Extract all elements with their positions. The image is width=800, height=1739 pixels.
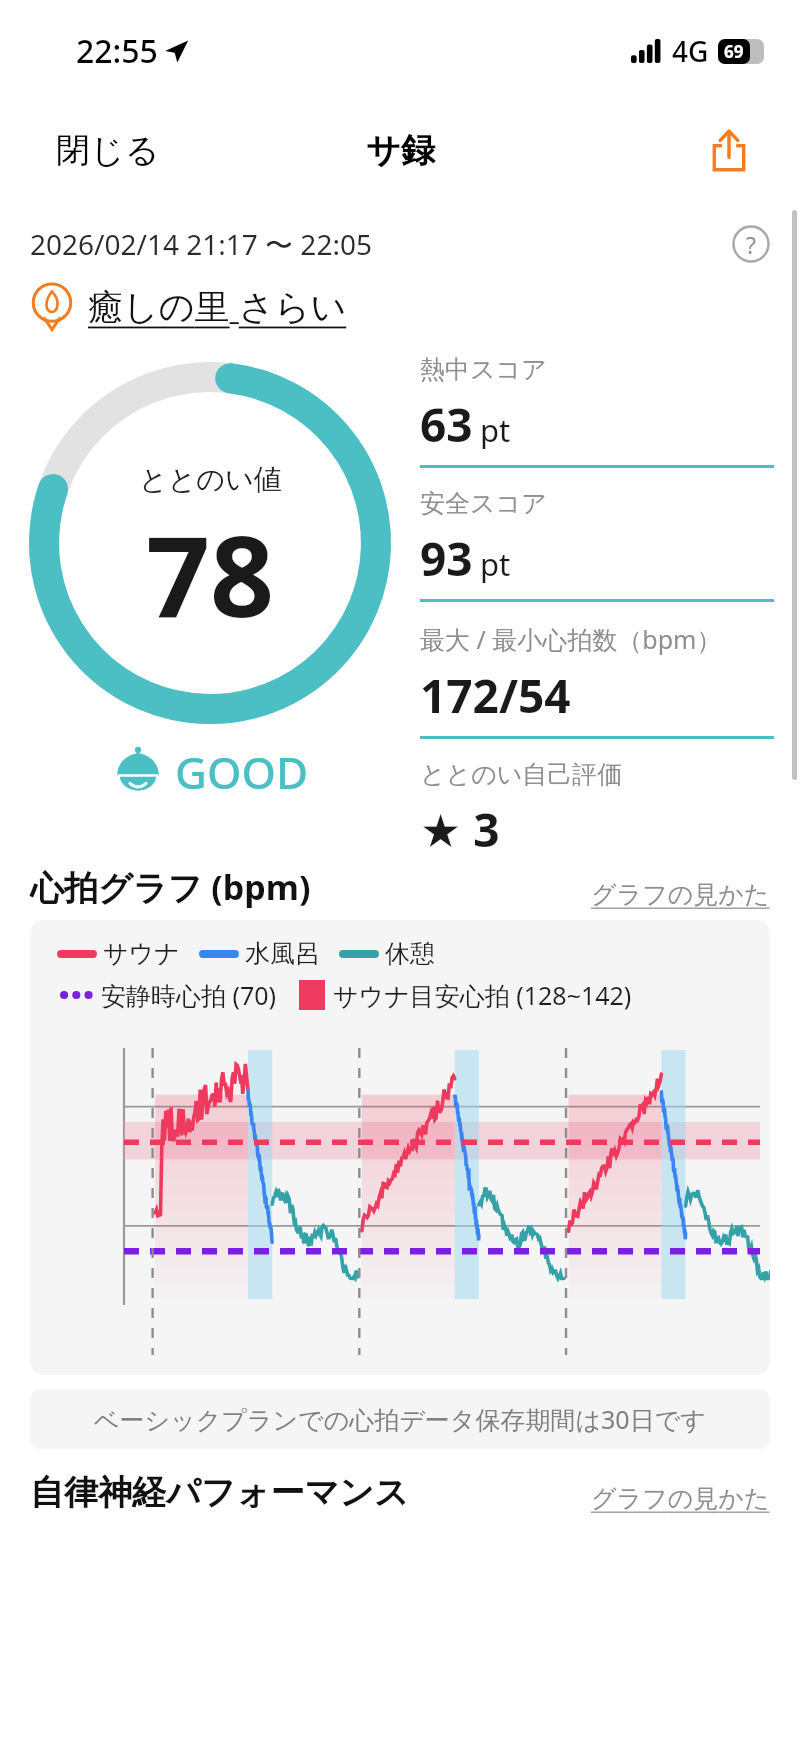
staticText: ★ 3 xyxy=(420,798,500,854)
staticText: 4G xyxy=(672,32,709,70)
staticText: 水風呂 xyxy=(245,938,320,969)
staticText: グラフの見かた xyxy=(591,879,770,910)
button[interactable]: Share xyxy=(686,107,772,193)
button[interactable]: 安全スコア xyxy=(420,488,774,622)
staticText: 69 xyxy=(724,40,744,63)
staticText: pt xyxy=(480,409,511,451)
staticText: 心拍グラフ (bpm) xyxy=(30,864,311,910)
staticText: 78 xyxy=(146,497,275,650)
button[interactable]: Help xyxy=(728,221,774,267)
button[interactable]: 最大 / 最小心拍数（bpm） xyxy=(420,622,774,759)
staticText: サウナ xyxy=(103,938,180,969)
button[interactable]: ととのい自己評価 xyxy=(420,759,774,854)
staticText: 22:55 xyxy=(76,29,158,73)
button[interactable]: 癒しの里 さらい xyxy=(28,274,800,338)
button[interactable]: ベーシックプランでの心拍データ保存期間は30日です xyxy=(30,1389,770,1449)
staticText: ベーシックプランでの心拍データ保存期間は30日です xyxy=(94,1402,706,1436)
staticText: GOOD xyxy=(175,742,309,802)
button[interactable]: グラフの見かた xyxy=(591,1483,770,1514)
staticText: 最大 / 最小心拍数（bpm） xyxy=(420,622,722,656)
staticText: ととのい値 xyxy=(139,462,282,497)
staticText: 自律神経パフォーマンス xyxy=(30,1471,409,1514)
button[interactable]: 閉じる xyxy=(26,106,190,194)
staticText: サウナ目安心拍 (128~142) xyxy=(333,978,632,1012)
staticText: 93 xyxy=(420,527,473,590)
staticText: ととのい自己評価 xyxy=(420,759,623,790)
staticText: 閉じる xyxy=(56,129,160,172)
staticText: 熱中スコア xyxy=(420,354,547,385)
button[interactable]: 熱中スコア xyxy=(420,354,774,488)
staticText: 172/54 xyxy=(420,664,571,727)
staticText: 2026/02/14 21:17 〜 22:05 xyxy=(30,225,372,263)
button[interactable]: グラフの見かた xyxy=(591,879,770,910)
staticText: サ録 xyxy=(366,129,435,172)
staticText: グラフの見かた xyxy=(591,1483,770,1514)
staticText: 休憩 xyxy=(385,938,435,969)
staticText: 安静時心拍 (70) xyxy=(101,978,277,1012)
staticText: 安全スコア xyxy=(420,488,547,519)
staticText: ? xyxy=(746,229,756,260)
staticText: pt xyxy=(480,543,511,585)
staticText: 癒しの里 さらい xyxy=(88,282,347,330)
staticText: 63 xyxy=(420,393,473,456)
